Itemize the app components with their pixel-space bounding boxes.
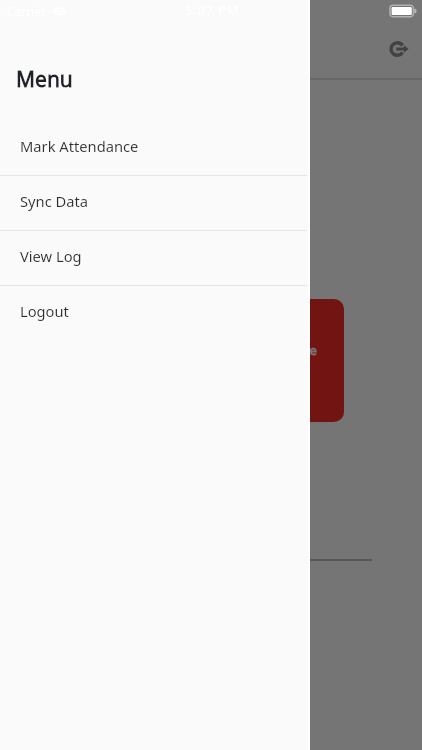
button[interactable]: Close navigation drawer bbox=[0, 0, 422, 750]
button[interactable]: Mark Attendance bbox=[0, 121, 310, 175]
staticText: Logout bbox=[20, 301, 69, 321]
button[interactable]: Logout bbox=[0, 286, 310, 340]
button[interactable]: View Log bbox=[0, 231, 310, 285]
button[interactable]: Logout bbox=[378, 27, 422, 71]
staticText: Sync Data bbox=[20, 191, 89, 211]
staticText: Menu bbox=[16, 65, 73, 94]
staticText: Mark Attendance bbox=[20, 136, 139, 156]
button[interactable]: Sync Data bbox=[0, 176, 310, 230]
button[interactable]: Mark Attendance bbox=[40, 299, 344, 422]
staticText: View Log bbox=[20, 246, 82, 266]
staticText: Mark Attendance bbox=[212, 341, 317, 359]
